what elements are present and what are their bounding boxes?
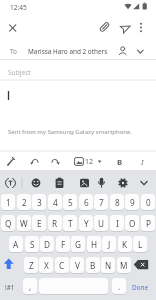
button[interactable]: A — [9, 236, 23, 252]
staticText: C — [59, 260, 65, 271]
button[interactable] — [2, 278, 22, 295]
staticText: Q — [5, 218, 12, 229]
button[interactable] — [0, 60, 156, 79]
button[interactable]: 5 — [63, 194, 77, 210]
button[interactable] — [112, 153, 127, 170]
button[interactable] — [97, 19, 113, 35]
staticText: 7 — [99, 197, 104, 208]
staticText: A — [13, 239, 19, 250]
staticText: 12:45 — [10, 3, 27, 12]
button[interactable] — [135, 175, 152, 191]
button[interactable] — [0, 41, 112, 59]
button[interactable] — [127, 278, 154, 295]
staticText: K — [122, 239, 128, 250]
button[interactable]: 4 — [48, 194, 62, 210]
button[interactable] — [114, 43, 131, 60]
button[interactable]: G — [71, 236, 85, 252]
button[interactable] — [93, 175, 110, 191]
staticText: I — [141, 157, 144, 168]
button[interactable]: 9 — [125, 194, 139, 210]
button[interactable]: J — [102, 236, 116, 252]
button[interactable] — [27, 153, 43, 170]
button[interactable] — [47, 153, 63, 170]
button[interactable] — [51, 175, 68, 191]
staticText: E — [37, 218, 42, 229]
staticText: J — [108, 239, 111, 250]
button[interactable] — [132, 43, 149, 60]
button[interactable] — [114, 175, 131, 191]
button[interactable] — [134, 19, 148, 35]
staticText: Sent from my Samsung Galaxy smartphone. — [8, 128, 133, 136]
button[interactable]: Y — [79, 215, 93, 231]
button[interactable]: S — [25, 236, 39, 252]
staticText: W — [20, 218, 28, 229]
button[interactable]: B — [86, 257, 100, 273]
staticText: M — [120, 260, 128, 271]
staticText: To — [10, 47, 17, 56]
button[interactable] — [71, 153, 87, 170]
button[interactable]: R — [48, 215, 62, 231]
button[interactable]: D — [40, 236, 54, 252]
button[interactable]: 1 — [1, 194, 15, 210]
staticText: 8 — [115, 197, 120, 208]
button[interactable]: 6 — [79, 194, 93, 210]
button[interactable]: 2 — [17, 194, 31, 210]
button[interactable]: P — [141, 215, 155, 231]
button[interactable]: 0 — [141, 194, 155, 210]
button[interactable] — [133, 257, 154, 274]
button[interactable]: 3 — [32, 194, 46, 210]
staticText: 2 — [22, 197, 27, 208]
staticText: 9 — [130, 197, 135, 208]
staticText: X — [44, 260, 49, 271]
button[interactable] — [3, 153, 19, 170]
button[interactable]: U — [94, 215, 108, 231]
button[interactable] — [118, 19, 134, 35]
staticText: Y — [84, 218, 89, 229]
button[interactable]: K — [118, 236, 132, 252]
button[interactable]: T — [63, 215, 77, 231]
button[interactable]: N — [101, 257, 115, 273]
button[interactable] — [2, 257, 23, 274]
staticText: B — [117, 157, 123, 168]
button[interactable]: W — [17, 215, 31, 231]
button[interactable]: Q — [1, 215, 15, 231]
staticText: H — [91, 239, 98, 250]
staticText: Z — [29, 260, 34, 271]
button[interactable] — [2, 175, 19, 191]
staticText: P — [146, 218, 151, 229]
staticText: . — [118, 281, 121, 292]
staticText: N — [105, 260, 112, 271]
staticText: G — [75, 239, 81, 250]
staticText: B — [90, 260, 96, 271]
button[interactable]: V — [70, 257, 84, 273]
button[interactable]: H — [87, 236, 101, 252]
staticText: 3 — [37, 197, 42, 208]
staticText: Marissa Haro and 2 others — [28, 47, 108, 56]
button[interactable]: O — [125, 215, 139, 231]
button[interactable]: L — [133, 236, 147, 252]
button[interactable]: E — [32, 215, 46, 231]
button[interactable]: F — [56, 236, 70, 252]
staticText: I — [116, 218, 119, 229]
staticText: 6 — [84, 197, 89, 208]
button[interactable]: I — [110, 215, 124, 231]
button[interactable]: . — [112, 278, 126, 294]
button[interactable] — [76, 175, 93, 191]
button[interactable]: C — [55, 257, 69, 273]
button[interactable] — [28, 175, 44, 191]
staticText: T — [68, 218, 73, 229]
button[interactable]: , — [23, 278, 37, 294]
button[interactable] — [5, 20, 21, 36]
staticText: F — [61, 239, 66, 250]
button[interactable]: 7 — [94, 194, 108, 210]
button[interactable]: M — [117, 257, 131, 273]
staticText: 12 — [85, 157, 94, 167]
button[interactable]: X — [39, 257, 53, 273]
staticText: L — [138, 239, 143, 250]
button[interactable]: Z — [24, 257, 38, 273]
staticText: 1 — [6, 197, 11, 208]
button[interactable] — [135, 153, 148, 170]
button[interactable]: 8 — [110, 194, 124, 210]
button[interactable] — [84, 153, 103, 170]
